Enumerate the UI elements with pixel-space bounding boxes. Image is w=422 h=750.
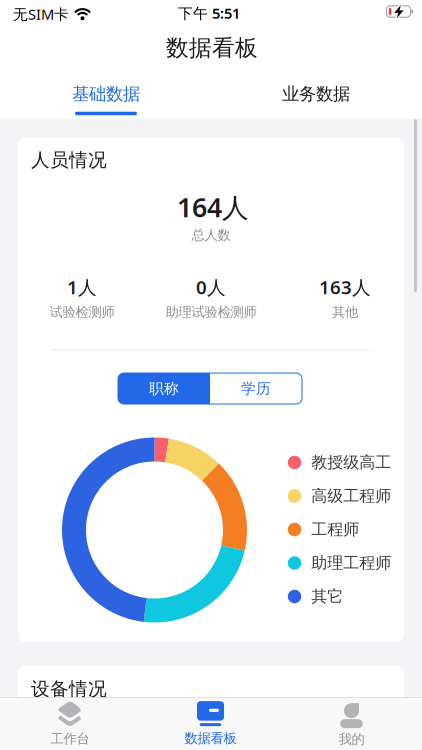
button[interactable]: 我的	[281, 698, 422, 750]
staticText: 1人	[67, 275, 97, 299]
staticText: 无SIM卡	[13, 4, 69, 24]
staticText: 学历	[241, 379, 271, 397]
button[interactable]: 学历	[210, 373, 302, 404]
button[interactable]: 数据看板	[140, 698, 281, 750]
button[interactable]: 职称	[118, 373, 210, 404]
staticText: 总人数	[191, 227, 230, 243]
staticText: 163人	[319, 275, 371, 299]
staticText: 0人	[196, 275, 226, 299]
staticText: 试验检测师	[49, 304, 114, 320]
staticText: 164人	[177, 189, 249, 225]
staticText: 业务数据	[282, 83, 350, 105]
button[interactable]: 基础数据	[56, 74, 156, 118]
staticText: 助理试验检测师	[165, 304, 256, 320]
staticText: 工程师	[311, 520, 359, 539]
staticText: 工作台	[50, 731, 89, 747]
staticText: 其它	[311, 587, 343, 606]
staticText: 下午 5:51	[178, 3, 240, 23]
staticText: 人员情况	[31, 148, 107, 171]
staticText: 设备情况	[31, 677, 107, 700]
button[interactable]: 工作台	[0, 698, 140, 750]
staticText: 我的	[338, 731, 364, 748]
button[interactable]: 业务数据	[266, 76, 366, 112]
staticText: 数据看板	[184, 730, 236, 747]
staticText: 教授级高工	[311, 453, 391, 472]
staticText: 基础数据	[72, 83, 140, 105]
staticText: 职称	[149, 379, 179, 397]
staticText: 助理工程师	[311, 553, 391, 573]
staticText: 高级工程师	[311, 486, 391, 506]
staticText: 其他	[332, 304, 358, 320]
staticText: 数据看板	[166, 34, 258, 62]
